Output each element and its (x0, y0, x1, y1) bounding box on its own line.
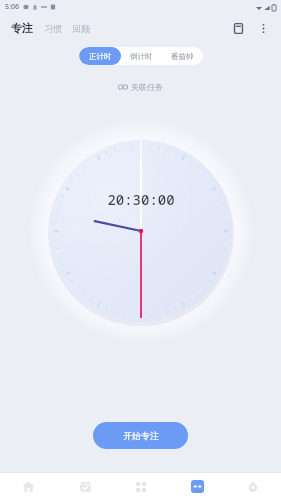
button[interactable]: Notes (228, 18, 248, 38)
staticText: 番茄钟 (171, 52, 194, 61)
staticText: 回顾 (72, 23, 90, 34)
button[interactable]: 番茄钟 (162, 47, 203, 65)
button[interactable]: 开始专注 (93, 422, 188, 449)
button[interactable]: Focus (169, 473, 225, 500)
button[interactable]: Calendar (57, 473, 113, 500)
button[interactable]: Profile (225, 473, 281, 500)
button[interactable]: 倒计时 (121, 47, 162, 65)
staticText: 20:30:00 (107, 190, 175, 209)
staticText: 习惯 (44, 23, 62, 34)
button[interactable]: 正计时 (79, 47, 121, 65)
staticText: 正计时 (89, 52, 112, 61)
staticText: 关联任务 (131, 82, 163, 92)
staticText: 专注 (11, 21, 33, 35)
button[interactable]: 回顾 (72, 23, 90, 34)
button[interactable]: Home (0, 473, 57, 500)
staticText: 倒计时 (130, 52, 153, 61)
staticText: 开始专注 (123, 430, 159, 441)
button[interactable]: 专注 (11, 21, 33, 35)
staticText: 5:06 (5, 2, 19, 12)
button[interactable]: Matrix (113, 473, 169, 500)
button[interactable]: More options (253, 18, 273, 38)
button[interactable]: 习惯 (44, 23, 62, 34)
button[interactable]: 关联任务 (114, 80, 167, 94)
